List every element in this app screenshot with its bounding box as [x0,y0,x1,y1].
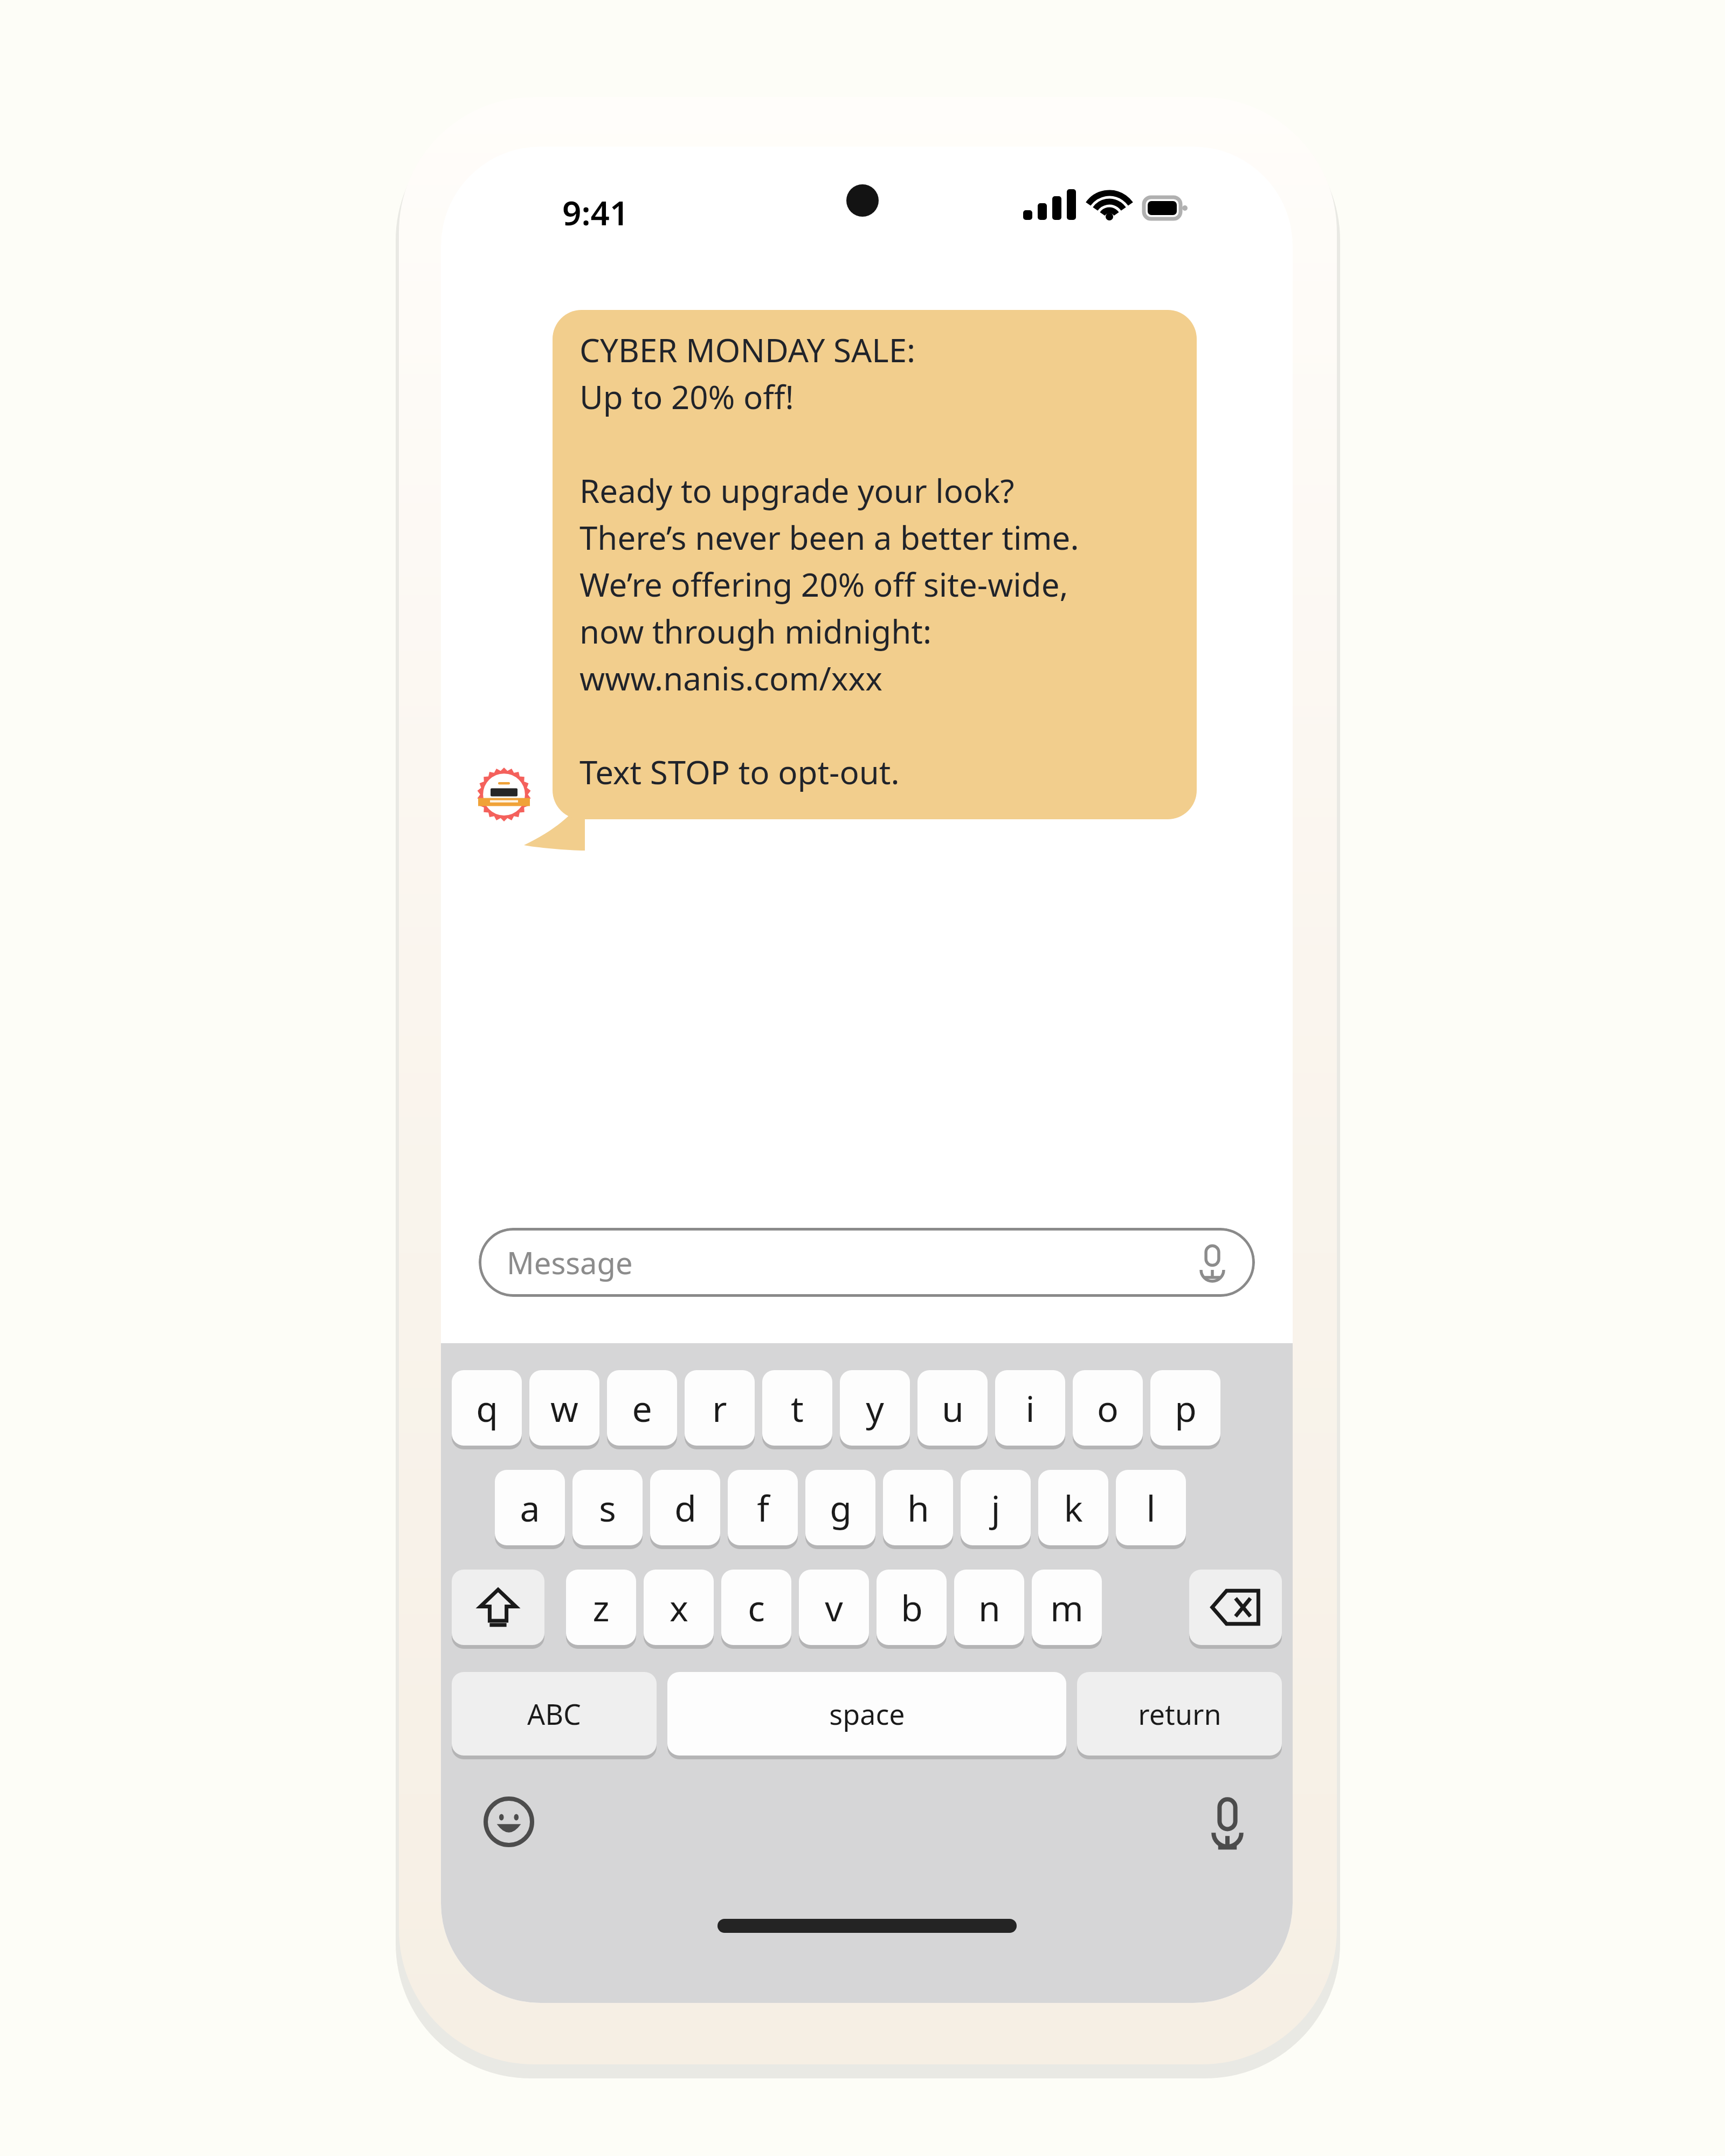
button[interactable]: Emoji [483,1796,535,1848]
staticText: n [978,1583,1000,1632]
button[interactable]: space [667,1672,1066,1756]
button[interactable]: d [650,1470,720,1545]
staticText: We’re offering 20% off site-wide, [579,562,1068,606]
button[interactable]: v [799,1570,869,1645]
button[interactable]: l [1116,1470,1186,1545]
button[interactable]: r [685,1370,755,1446]
staticText: space [829,1695,905,1733]
button[interactable]: n [954,1570,1024,1645]
button[interactable]: return [1077,1672,1282,1756]
button[interactable]: CYBER MONDAY SALE: [553,310,1197,819]
button[interactable]: p [1150,1370,1220,1446]
staticText: y [866,1384,884,1432]
staticText: m [1050,1583,1084,1632]
staticText: CYBER MONDAY SALE: [579,328,916,372]
staticText: a [520,1483,540,1532]
staticText: Message [507,1242,633,1283]
staticText: p [1175,1384,1197,1432]
staticText: c [748,1583,765,1632]
staticText: s [599,1483,616,1532]
button[interactable]: i [995,1370,1065,1446]
button[interactable]: u [917,1370,988,1446]
staticText: v [825,1583,843,1632]
button[interactable]: Voice input [1193,1243,1231,1281]
button[interactable]: Voice typing [1204,1796,1251,1853]
staticText: o [1097,1384,1119,1432]
button[interactable]: y [840,1370,910,1446]
button[interactable]: h [883,1470,953,1545]
staticText: now through midnight: [579,609,931,653]
staticText: u [942,1384,964,1432]
button[interactable]: b [877,1570,947,1645]
staticText: w [550,1384,578,1432]
button[interactable]: ABC [452,1672,657,1756]
button[interactable]: j [961,1470,1031,1545]
button[interactable]: t [762,1370,832,1446]
button[interactable]: f [728,1470,798,1545]
staticText: www.nanis.com/xxx [579,656,883,700]
button[interactable]: k [1038,1470,1108,1545]
button[interactable]: Shift [452,1570,544,1645]
staticText: return [1138,1695,1222,1733]
button[interactable]: s [572,1470,643,1545]
staticText: t [791,1384,804,1432]
staticText: g [830,1483,852,1532]
staticText: j [991,1483,1000,1532]
button[interactable]: o [1073,1370,1143,1446]
button[interactable]: x [644,1570,714,1645]
staticText: 9:41 [562,190,629,235]
staticText: l [1146,1483,1156,1532]
staticText: r [712,1384,727,1432]
staticText: i [1025,1384,1035,1432]
staticText: z [592,1583,610,1632]
button[interactable]: w [529,1370,599,1446]
staticText: d [674,1483,696,1532]
button[interactable]: Backspace [1189,1570,1282,1645]
staticText: Up to 20% off! [579,375,794,419]
staticText: f [757,1483,769,1532]
button[interactable]: m [1032,1570,1102,1645]
button[interactable]: Bola's Baked Goods avatar [477,768,531,821]
button[interactable]: a [495,1470,565,1545]
staticText: x [670,1583,688,1632]
staticText: b [901,1583,923,1632]
button[interactable]: c [721,1570,791,1645]
staticText: There’s never been a better time. [579,515,1079,559]
staticText: k [1064,1483,1083,1532]
staticText: Text STOP to opt-out. [579,750,900,794]
button[interactable]: g [805,1470,875,1545]
button[interactable]: z [566,1570,636,1645]
staticText: q [476,1384,498,1432]
staticText: ABC [527,1695,581,1733]
button[interactable]: e [607,1370,677,1446]
button[interactable]: Message [479,1228,1255,1297]
staticText: Ready to upgrade your look? [579,468,1015,513]
staticText: e [632,1384,652,1432]
button[interactable]: q [452,1370,522,1446]
staticText: h [907,1483,929,1532]
